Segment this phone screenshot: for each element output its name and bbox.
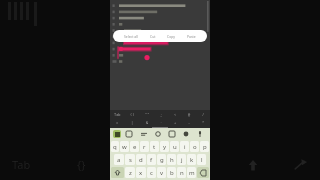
button[interactable]: s: [125, 154, 135, 165]
button[interactable]: Toolbar: [113, 130, 121, 138]
button[interactable]: Share up: [244, 156, 262, 174]
button[interactable]: q: [111, 141, 119, 152]
button[interactable]: Sticker: [136, 128, 151, 140]
staticText: d: [139, 156, 143, 164]
button[interactable]: ;: [154, 110, 168, 118]
button[interactable]: Copy: [166, 33, 176, 40]
button[interactable]: v: [157, 167, 166, 178]
staticText: q: [113, 143, 117, 151]
staticText: l: [201, 156, 203, 164]
button[interactable]: @: [182, 110, 196, 118]
button[interactable]: x: [136, 167, 146, 178]
button[interactable]: (): [125, 110, 140, 118]
staticText: o: [193, 143, 197, 151]
staticText: c: [150, 169, 153, 177]
button[interactable]: Tab: [6, 155, 37, 174]
staticText: Cut: [150, 34, 156, 39]
button[interactable]: k: [187, 154, 196, 165]
button[interactable]: z: [125, 167, 135, 178]
button[interactable]: =: [110, 118, 125, 127]
button[interactable]: h: [167, 154, 176, 165]
button[interactable]: Clipboard: [165, 128, 179, 140]
staticText: u: [173, 143, 177, 151]
staticText: b: [170, 169, 174, 177]
button[interactable]: Emoji: [179, 128, 193, 140]
button[interactable]: u: [170, 141, 179, 152]
staticText: Tab: [12, 157, 31, 172]
button[interactable]: p: [200, 141, 209, 152]
button[interactable]: l: [197, 154, 206, 165]
button[interactable]: <: [168, 110, 182, 118]
button[interactable]: o: [190, 141, 199, 152]
staticText: <: [174, 112, 177, 117]
button[interactable]: &: [140, 118, 154, 127]
staticText: i: [184, 143, 186, 151]
staticText: e: [133, 143, 137, 151]
staticText: =: [116, 120, 119, 125]
button[interactable]: f: [147, 154, 156, 165]
staticText: g: [160, 156, 164, 164]
button[interactable]: Backspace: [197, 167, 209, 178]
button[interactable]: |: [125, 118, 140, 127]
staticText: @: [188, 112, 191, 117]
staticText: m: [189, 169, 195, 177]
button[interactable]: Paste: [186, 33, 197, 40]
staticText: f: [150, 156, 153, 164]
staticText: *: [202, 120, 205, 125]
button[interactable]: +: [168, 118, 182, 127]
button[interactable]: g: [157, 154, 166, 165]
staticText: /: [202, 112, 205, 117]
button[interactable]: Share: [292, 156, 310, 174]
button[interactable]: i: [180, 141, 189, 152]
button[interactable]: m: [187, 167, 196, 178]
button[interactable]: d: [136, 154, 146, 165]
button[interactable]: Settings: [151, 128, 165, 140]
staticText: j: [181, 156, 183, 164]
staticText: p: [203, 143, 207, 151]
staticText: x: [139, 169, 143, 177]
button[interactable]: Cut: [149, 33, 157, 40]
button[interactable]: t: [150, 141, 159, 152]
staticText: ·: [160, 120, 163, 125]
button[interactable]: e: [130, 141, 139, 152]
staticText: w: [122, 143, 127, 151]
button[interactable]: Select all: [123, 33, 139, 40]
button[interactable]: Shift: [111, 167, 124, 178]
staticText: v: [160, 169, 164, 177]
button[interactable]: Voice: [193, 128, 207, 140]
staticText: k: [190, 156, 194, 164]
staticText: +: [174, 120, 177, 125]
button[interactable]: *: [196, 118, 210, 127]
staticText: Paste: [187, 34, 196, 39]
staticText: {}: [77, 157, 86, 172]
button[interactable]: y: [160, 141, 169, 152]
staticText: ;: [160, 112, 163, 117]
button[interactable]: c: [147, 167, 156, 178]
button[interactable]: n: [177, 167, 186, 178]
staticText: (): [130, 112, 135, 117]
staticText: n: [180, 169, 184, 177]
staticText: z: [129, 169, 132, 177]
button[interactable]: /: [196, 110, 210, 118]
button[interactable]: "": [140, 110, 154, 118]
button[interactable]: r: [140, 141, 149, 152]
button[interactable]: j: [177, 154, 186, 165]
staticText: Select all: [124, 34, 138, 39]
staticText: "": [145, 112, 150, 117]
button[interactable]: Tab: [110, 110, 125, 118]
staticText: a: [117, 156, 121, 164]
staticText: Copy: [167, 34, 175, 39]
staticText: r: [143, 143, 146, 151]
staticText: s: [129, 156, 132, 164]
staticText: y: [163, 143, 167, 151]
staticText: |: [131, 120, 134, 125]
button[interactable]: a: [114, 154, 124, 165]
staticText: Tab: [114, 112, 121, 117]
button[interactable]: {}: [71, 155, 92, 174]
button[interactable]: GIF: [121, 128, 136, 140]
staticText: -: [188, 120, 191, 125]
button[interactable]: b: [167, 167, 176, 178]
button[interactable]: w: [120, 141, 129, 152]
